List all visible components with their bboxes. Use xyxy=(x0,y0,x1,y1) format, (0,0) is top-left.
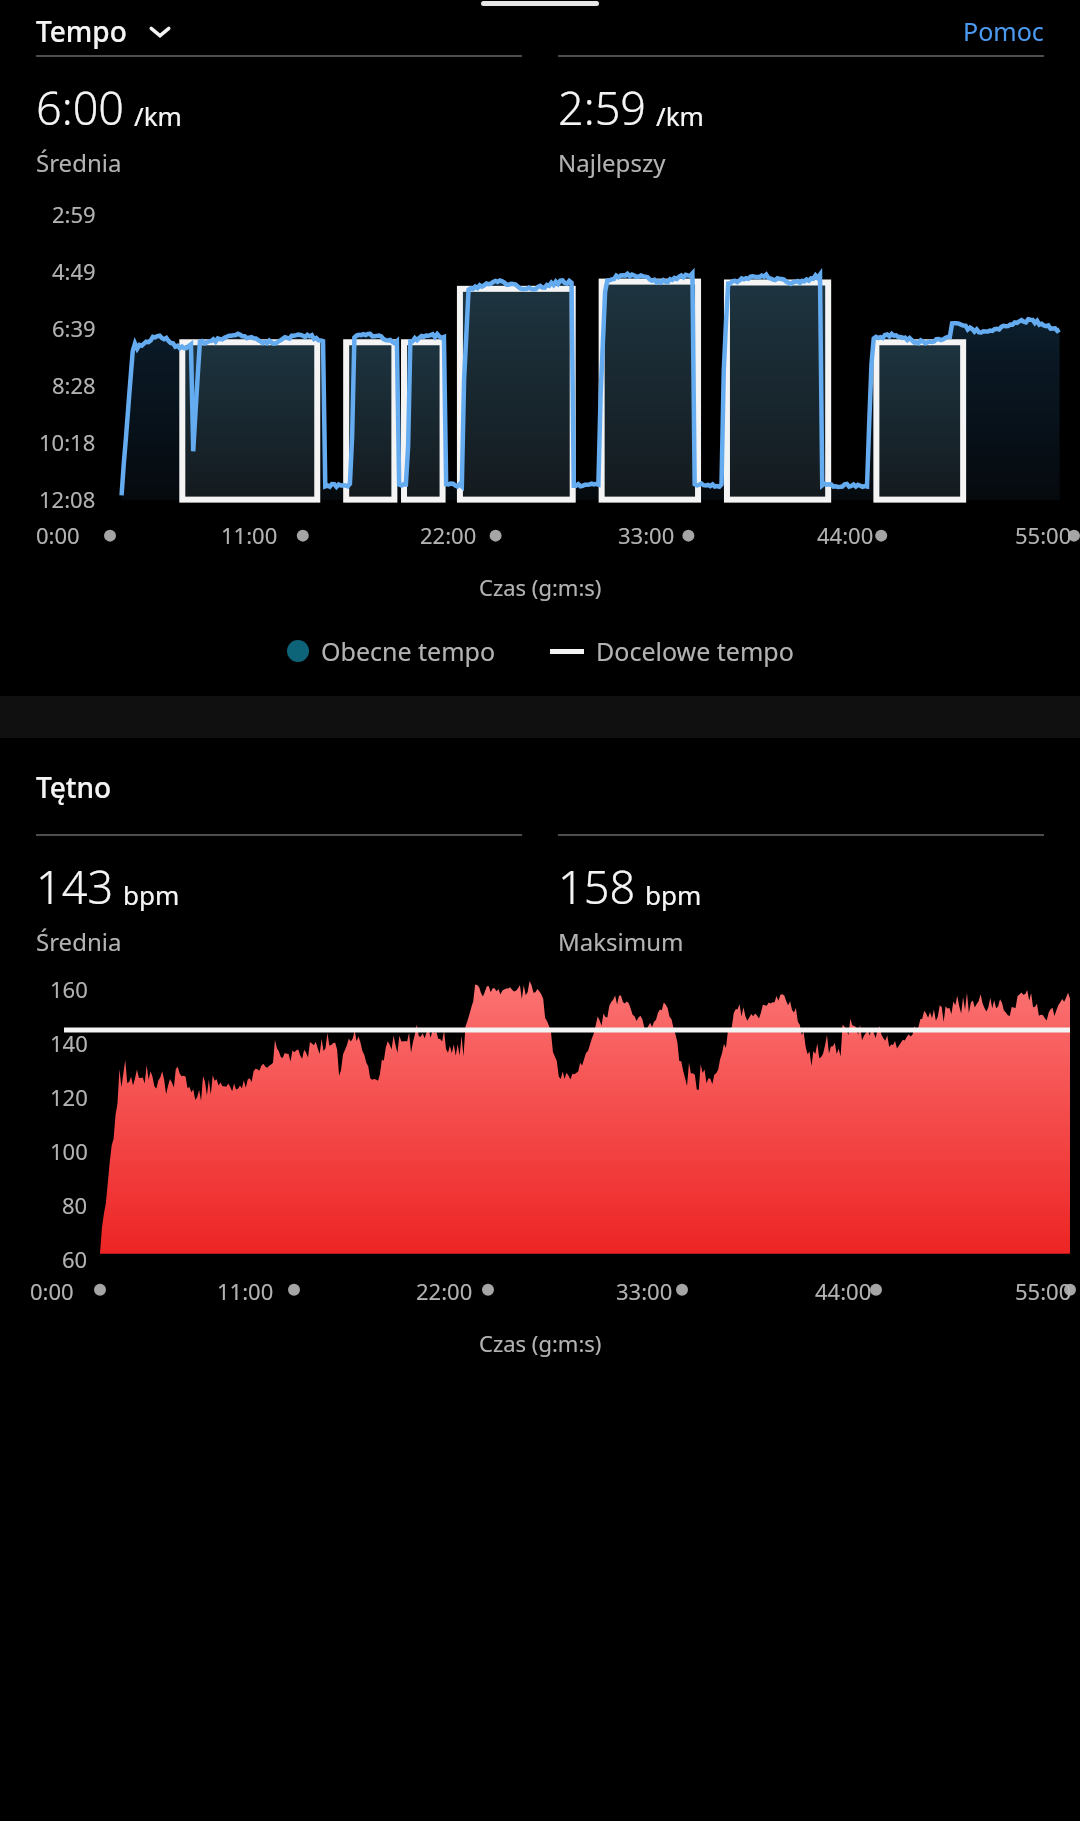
button[interactable]: 143 xyxy=(36,834,522,958)
staticText: bpm xyxy=(123,877,180,912)
button[interactable]: 2:59 xyxy=(0,179,1080,554)
staticText: Obecne tempo xyxy=(321,634,496,668)
staticText: 120 xyxy=(50,1082,88,1112)
staticText: 0:00 xyxy=(30,1276,74,1306)
staticText: 160 xyxy=(50,974,88,1004)
staticText: 100 xyxy=(50,1136,88,1166)
button[interactable]: Tempo xyxy=(36,12,173,50)
button[interactable]: 160 xyxy=(0,958,1080,1308)
staticText: 2:59 xyxy=(52,199,96,229)
button[interactable]: Tętno xyxy=(36,768,112,806)
staticText: 22:00 xyxy=(420,520,477,550)
staticText: 158 xyxy=(558,856,636,917)
button[interactable]: 6:00 xyxy=(36,55,522,179)
staticText: 33:00 xyxy=(618,520,675,550)
staticText: /km xyxy=(656,98,704,133)
staticText: 10:18 xyxy=(39,427,96,457)
staticText: Docelowe tempo xyxy=(596,634,794,668)
staticText: 4:49 xyxy=(52,256,96,286)
staticText: 44:00 xyxy=(815,1276,872,1306)
staticText: 33:00 xyxy=(616,1276,673,1306)
staticText: 44:00 xyxy=(817,520,874,550)
staticText: 60 xyxy=(62,1244,88,1274)
staticText: 6:00 xyxy=(36,77,125,138)
staticText: Czas (g:m:s) xyxy=(479,572,602,602)
button[interactable]: Obecne tempo xyxy=(287,634,496,668)
staticText: 12:08 xyxy=(39,484,96,514)
staticText: 140 xyxy=(50,1028,88,1058)
button[interactable]: Docelowe tempo xyxy=(550,634,794,668)
staticText: Średnia xyxy=(36,146,122,179)
other: Zmień wykres xyxy=(147,18,173,44)
staticText: 80 xyxy=(62,1190,88,1220)
staticText: bpm xyxy=(645,877,702,912)
staticText: 55:00 xyxy=(1015,1276,1072,1306)
button[interactable]: Pomoc xyxy=(957,8,1050,54)
staticText: Średnia xyxy=(36,925,122,958)
staticText: Czas (g:m:s) xyxy=(479,1328,602,1358)
staticText: 143 xyxy=(36,856,114,917)
staticText: 8:28 xyxy=(52,370,96,400)
staticText: Maksimum xyxy=(558,925,684,958)
staticText: Tempo xyxy=(36,12,127,50)
staticText: 55:00 xyxy=(1015,520,1072,550)
staticText: /km xyxy=(134,98,182,133)
button[interactable]: 2:59 xyxy=(558,55,1044,179)
staticText: 11:00 xyxy=(217,1276,274,1306)
staticText: 6:39 xyxy=(52,313,96,343)
staticText: Najlepszy xyxy=(558,146,666,179)
staticText: 2:59 xyxy=(558,77,647,138)
staticText: 22:00 xyxy=(416,1276,473,1306)
staticText: 0:00 xyxy=(36,520,80,550)
staticText: 11:00 xyxy=(221,520,278,550)
button[interactable]: 158 xyxy=(558,834,1044,958)
